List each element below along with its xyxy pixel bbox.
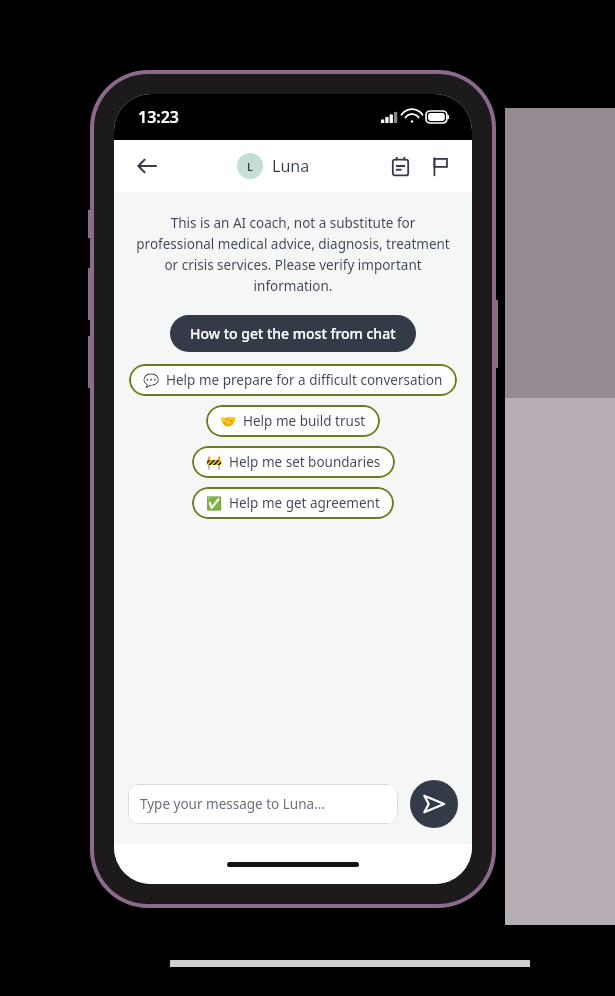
staticText: Luna <box>272 155 310 177</box>
staticText: Help me set boundaries <box>229 453 381 471</box>
button[interactable]: Type your message to Luna... <box>128 784 398 824</box>
staticText: 13:23 <box>138 106 180 128</box>
staticText: 🚧 <box>206 455 223 470</box>
staticText: Type your message to Luna... <box>140 795 325 813</box>
staticText: Help me build trust <box>243 412 366 430</box>
button[interactable]: L <box>237 153 310 179</box>
staticText: ✅ <box>206 496 223 511</box>
button[interactable]: 🤝 <box>206 405 380 437</box>
button[interactable]: 💬 <box>129 364 457 396</box>
staticText: This is an AI coach, not a substitute fo… <box>132 214 454 295</box>
staticText: 🤝 <box>220 414 237 429</box>
button[interactable]: ✅ <box>192 487 394 519</box>
staticText: Help me prepare for a difficult conversa… <box>166 371 443 389</box>
staticText: How to get the most from chat <box>190 324 396 343</box>
button[interactable]: Send <box>410 780 458 828</box>
button[interactable]: Report <box>424 150 456 182</box>
button[interactable]: Notes <box>384 150 416 182</box>
button[interactable]: Back <box>130 149 164 183</box>
button[interactable]: How to get the most from chat <box>170 315 416 352</box>
staticText: 💬 <box>143 373 160 388</box>
staticText: Help me get agreement <box>229 494 380 512</box>
staticText: L <box>247 159 254 174</box>
button[interactable]: 🚧 <box>192 446 395 478</box>
